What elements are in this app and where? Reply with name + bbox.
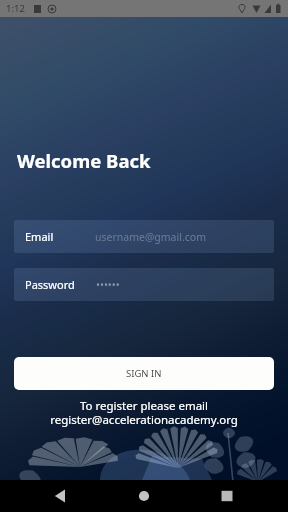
button[interactable]: To register please email register@accele… [0, 398, 288, 427]
staticText: SIGN IN [126, 367, 162, 380]
button[interactable]: Recent apps [213, 482, 241, 510]
button[interactable]: SIGN IN [14, 357, 274, 390]
staticText: Welcome Back [17, 148, 151, 173]
button[interactable]: Back [46, 482, 74, 510]
staticText: 1:12 [6, 2, 25, 15]
staticText: username@gmail.com [95, 230, 206, 244]
button[interactable]: Password [14, 268, 274, 301]
staticText: •••••• [96, 278, 120, 292]
staticText: Email [25, 229, 54, 244]
button[interactable]: Home [130, 482, 158, 510]
staticText: Password [25, 277, 75, 292]
button[interactable]: Email [14, 220, 274, 253]
